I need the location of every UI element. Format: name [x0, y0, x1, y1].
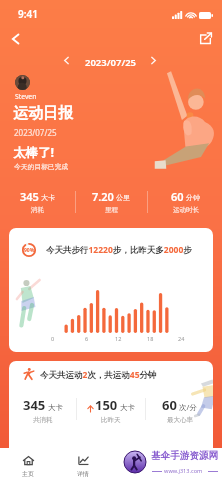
button[interactable]: 主页 — [0, 448, 55, 480]
staticText: 大卡 — [120, 403, 135, 412]
staticText: 次/分 — [179, 402, 197, 412]
button[interactable]: Profile — [15, 75, 30, 90]
staticText: 150 — [95, 396, 118, 414]
staticText: 9:41 — [18, 7, 38, 21]
staticText: 90% — [24, 247, 35, 254]
staticText: 大卡 — [41, 193, 55, 202]
staticText: 基伞手游资源网 — [151, 450, 219, 462]
staticText: 运动日报 — [13, 104, 73, 123]
staticText: 消耗 — [31, 206, 44, 214]
button[interactable]: 详情 — [55, 448, 110, 480]
button[interactable]: Share — [194, 27, 217, 50]
staticText: 大卡 — [48, 403, 63, 412]
staticText: 详情 — [77, 470, 89, 478]
staticText: 今天共运动2次，共运动45分钟 — [40, 369, 157, 381]
staticText: 2023/07/25 — [85, 56, 137, 69]
staticText: 0 — [51, 335, 55, 342]
button[interactable]: Previous day — [58, 52, 74, 68]
staticText: 18 — [147, 335, 154, 342]
staticText: 主页 — [22, 470, 34, 478]
staticText: 比昨天 — [101, 416, 121, 424]
button[interactable]: Back — [3, 27, 27, 51]
staticText: 今天共步行12220步，比昨天多2000步 — [46, 244, 192, 256]
staticText: 60 — [162, 396, 177, 414]
staticText: 分钟 — [186, 193, 200, 202]
staticText: Steven — [15, 92, 37, 101]
staticText: 345 — [20, 189, 39, 204]
staticText: 太棒了! — [13, 144, 55, 161]
staticText: 共消耗 — [33, 416, 53, 424]
staticText: 里程 — [105, 206, 118, 214]
staticText: 345 — [23, 396, 46, 414]
button[interactable]: 90% — [9, 228, 213, 352]
staticText: 今天的目标已完成 — [14, 162, 69, 171]
button[interactable]: 今天共运动2次，共运动45分钟 — [9, 361, 213, 456]
staticText: 60 — [171, 189, 184, 204]
button[interactable]: Next day — [145, 52, 161, 68]
staticText: 12 — [115, 335, 122, 342]
staticText: 24 — [178, 335, 185, 342]
staticText: 运动时长 — [173, 206, 199, 214]
staticText: 2023/07/25 — [14, 127, 57, 138]
staticText: 6 — [85, 335, 89, 342]
staticText: www.j313.com — [164, 467, 203, 475]
staticText: 最大心率 — [167, 416, 193, 424]
staticText: 7.20 — [92, 189, 114, 204]
staticText: 公里 — [116, 193, 130, 202]
